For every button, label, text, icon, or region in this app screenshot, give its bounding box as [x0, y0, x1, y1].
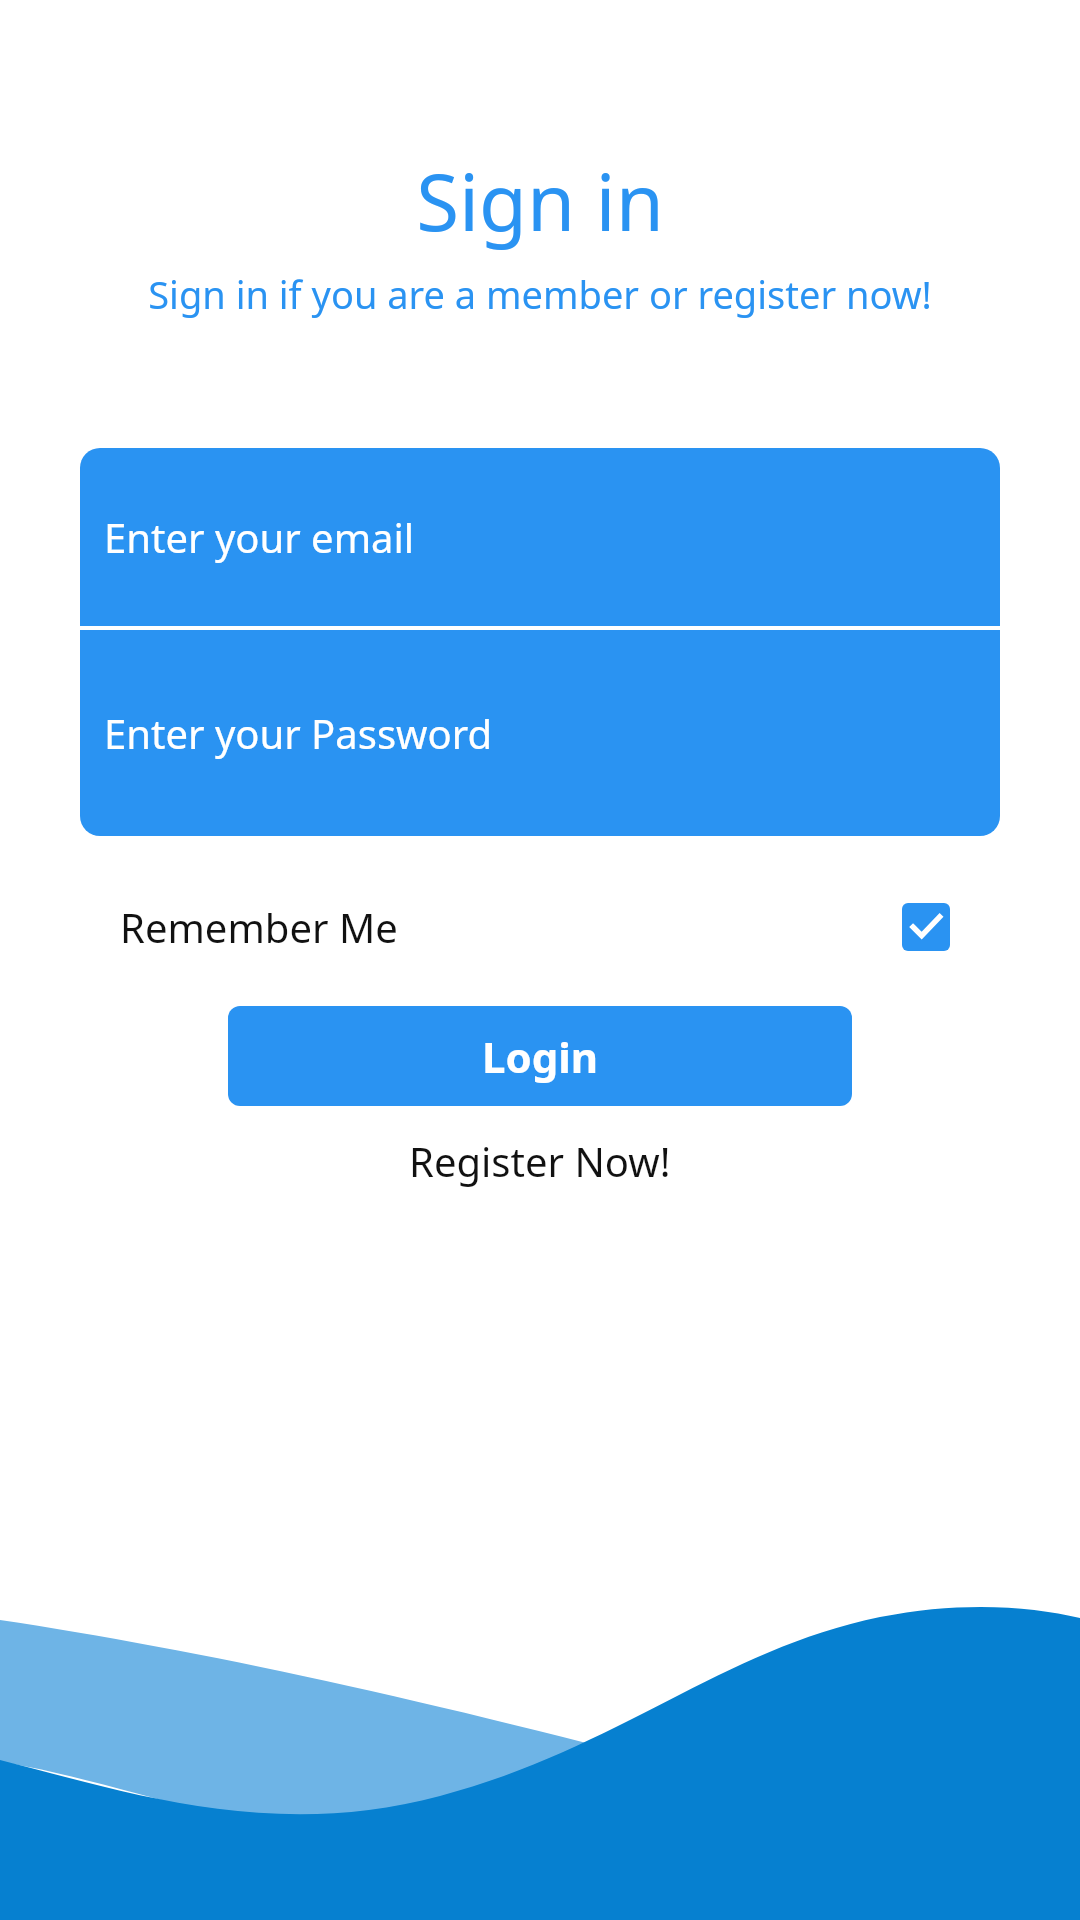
- button[interactable]: Enter your Password: [80, 630, 1000, 836]
- staticText: Enter your email: [104, 510, 415, 564]
- button[interactable]: Enter your email: [80, 448, 1000, 626]
- staticText: Register Now!: [409, 1134, 671, 1188]
- other: Remember me, checked: [902, 903, 950, 951]
- staticText: Enter your Password: [104, 706, 493, 760]
- staticText: Login: [482, 1028, 599, 1085]
- button[interactable]: Login: [228, 1006, 852, 1106]
- staticText: Remember Me: [120, 900, 398, 954]
- staticText: Sign in if you are a member or register …: [0, 268, 1080, 320]
- button[interactable]: Register Now!: [389, 1124, 691, 1198]
- staticText: Sign in: [0, 148, 1080, 254]
- button[interactable]: Remember Me: [120, 890, 950, 964]
